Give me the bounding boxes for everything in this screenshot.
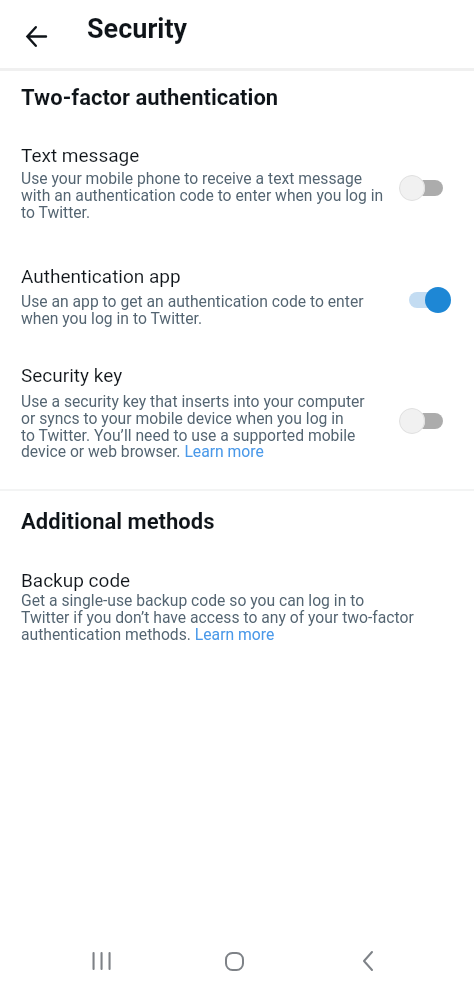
staticText: device or web browser. Learn more — [21, 442, 264, 460]
staticText: or syncs to your mobile device when you … — [21, 409, 344, 427]
staticText: to Twitter. You’ll need to use a support… — [21, 426, 356, 444]
button[interactable] — [14, 15, 58, 57]
staticText: Security — [87, 13, 188, 45]
button[interactable] — [211, 938, 257, 984]
staticText: Twitter if you don’t have access to any … — [21, 608, 414, 626]
staticText: with an authentication code to enter whe… — [21, 186, 384, 204]
staticText: Backup code — [21, 569, 131, 591]
staticText: Use a security key that inserts into you… — [21, 392, 365, 410]
staticText: Additional methods — [21, 509, 215, 535]
button[interactable] — [399, 174, 447, 202]
button[interactable] — [0, 566, 474, 652]
staticText: Use your mobile phone to receive a text … — [21, 169, 363, 187]
button[interactable] — [399, 407, 447, 435]
button[interactable] — [345, 938, 391, 984]
button[interactable] — [0, 362, 474, 470]
staticText: Get a single-use backup code so you can … — [21, 591, 365, 609]
staticText: Two-factor authentication — [21, 85, 279, 111]
staticText: to Twitter. — [21, 203, 91, 221]
button[interactable] — [0, 140, 474, 230]
staticText: Authentication app — [21, 265, 181, 287]
button[interactable] — [0, 260, 474, 332]
staticText: Security key — [21, 364, 123, 386]
staticText: when you log in to Twitter. — [21, 309, 203, 327]
staticText: Use an app to get an authentication code… — [21, 292, 364, 310]
staticText: authentication methods. Learn more — [21, 625, 275, 643]
button[interactable] — [403, 286, 451, 314]
button[interactable] — [79, 938, 125, 984]
staticText: Text message — [21, 144, 140, 166]
